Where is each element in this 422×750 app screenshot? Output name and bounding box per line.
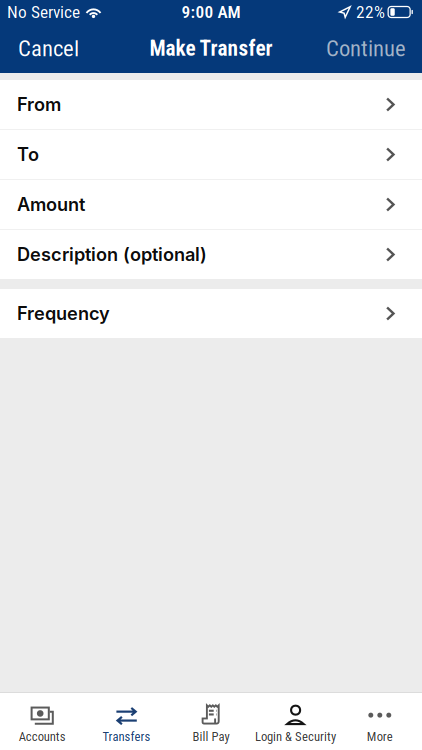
button[interactable]: Login & Security [253,693,338,750]
staticText: Cancel [18,35,79,62]
button[interactable]: Bill Pay [169,693,253,750]
staticText: Frequency [17,302,110,324]
button[interactable]: Amount [0,180,422,229]
button[interactable]: More [338,693,422,750]
staticText: More [367,729,393,744]
button[interactable]: Accounts [0,693,84,750]
staticText: Make Transfer [149,36,272,61]
staticText: To [17,143,39,165]
button[interactable]: From [0,80,422,129]
staticText: Bill Pay [192,729,229,744]
staticText: Description (optional) [17,243,207,265]
staticText: No Service [7,2,80,22]
staticText: Accounts [19,729,66,744]
staticText: Amount [17,193,85,215]
button[interactable]: Frequency [0,289,422,338]
button[interactable]: Transfers [84,693,169,750]
staticText: Login & Security [255,729,336,744]
staticText: 22% [356,2,385,22]
staticText: 9:00 AM [181,2,240,22]
button[interactable]: Description (optional) [0,230,422,279]
staticText: Transfers [103,729,151,744]
button[interactable]: Continue [319,28,413,69]
staticText: Continue [326,35,406,62]
button[interactable]: Cancel [11,28,86,69]
button[interactable]: To [0,130,422,179]
staticText: From [17,93,61,115]
